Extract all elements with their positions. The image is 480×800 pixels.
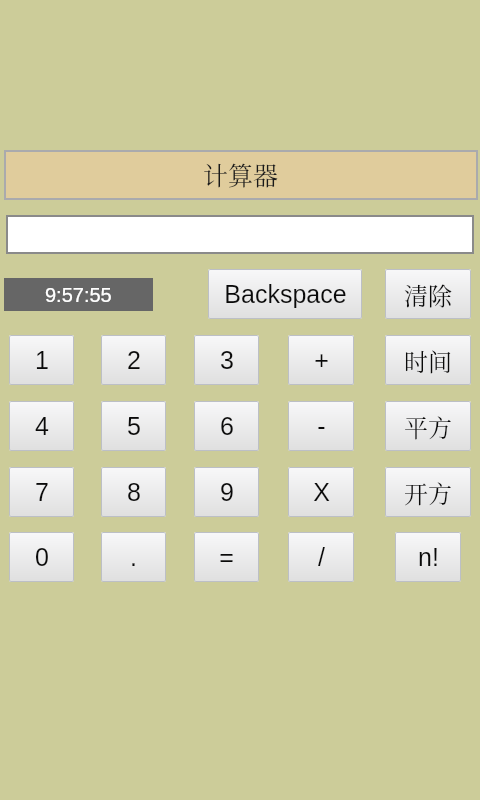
- staticText: 9: [220, 478, 234, 506]
- staticText: n!: [418, 543, 439, 571]
- button[interactable]: 5: [101, 401, 166, 451]
- staticText: 0: [35, 543, 49, 571]
- button[interactable]: 9: [194, 467, 259, 517]
- staticText: 计算器: [203, 156, 279, 192]
- button[interactable]: 清除: [385, 269, 471, 319]
- staticText: 开方: [404, 475, 452, 509]
- button[interactable]: +: [288, 335, 354, 385]
- staticText: 5: [127, 412, 141, 440]
- button[interactable]: 开方: [385, 467, 471, 517]
- staticText: Backspace: [224, 280, 347, 308]
- button[interactable]: 0: [9, 532, 74, 582]
- staticText: .: [130, 543, 137, 571]
- button[interactable]: 2: [101, 335, 166, 385]
- staticText: -: [317, 412, 326, 440]
- staticText: 清除: [404, 277, 452, 311]
- staticText: 9:57:55: [45, 284, 112, 306]
- button[interactable]: 9:57:55: [4, 278, 153, 311]
- staticText: 3: [220, 346, 234, 374]
- button[interactable]: 7: [9, 467, 74, 517]
- button[interactable]: Backspace: [208, 269, 362, 319]
- staticText: 1: [35, 346, 49, 374]
- button[interactable]: 计算器: [6, 152, 476, 198]
- button[interactable]: =: [194, 532, 259, 582]
- staticText: +: [314, 346, 329, 374]
- button[interactable]: 3: [194, 335, 259, 385]
- staticText: 7: [35, 478, 49, 506]
- staticText: 2: [127, 346, 141, 374]
- staticText: X: [313, 478, 330, 506]
- button[interactable]: 平方: [385, 401, 471, 451]
- button[interactable]: 时间: [385, 335, 471, 385]
- button[interactable]: n!: [395, 532, 461, 582]
- staticText: 6: [220, 412, 234, 440]
- button[interactable]: /: [288, 532, 354, 582]
- staticText: /: [318, 543, 325, 571]
- button[interactable]: 6: [194, 401, 259, 451]
- staticText: 平方: [404, 409, 452, 443]
- button[interactable]: X: [288, 467, 354, 517]
- button[interactable]: 4: [9, 401, 74, 451]
- button[interactable]: .: [101, 532, 166, 582]
- button[interactable]: -: [288, 401, 354, 451]
- staticText: 4: [35, 412, 49, 440]
- button[interactable]: 8: [101, 467, 166, 517]
- staticText: 时间: [404, 343, 452, 377]
- staticText: =: [219, 543, 234, 571]
- staticText: 8: [127, 478, 141, 506]
- button[interactable]: 1: [9, 335, 74, 385]
